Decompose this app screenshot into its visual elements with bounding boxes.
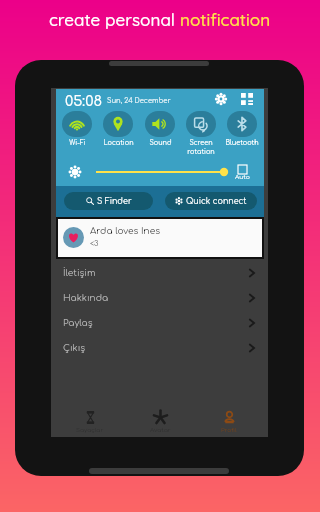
button[interactable]: Location — [96, 111, 140, 146]
staticText: Quick connect — [186, 197, 247, 206]
staticText: İletişim — [63, 268, 96, 278]
staticText: Paylaş — [63, 318, 93, 328]
button[interactable]: Edit quick settings — [241, 93, 253, 105]
button[interactable]: Avatar — [130, 406, 190, 437]
staticText: Sound — [149, 139, 172, 146]
button[interactable]: İletişim — [51, 260, 268, 285]
button[interactable]: Wi-Fi — [55, 111, 99, 146]
staticText: Location — [103, 139, 134, 146]
staticText: Wi-Fi — [69, 139, 86, 146]
staticText: Hakkında — [63, 293, 109, 303]
button[interactable]: Hakkında — [51, 285, 268, 310]
staticText: 05:08 — [65, 93, 103, 109]
staticText: Çıkış — [63, 343, 86, 353]
staticText: Auto — [235, 174, 250, 181]
button[interactable]: Arda loves Ines — [58, 219, 262, 257]
staticText: Screen rotation — [187, 139, 215, 155]
staticText: create personal — [49, 9, 180, 30]
staticText: Bluetooth — [225, 139, 259, 146]
staticText: notification — [180, 9, 271, 30]
button[interactable]: Screen rotation — [179, 111, 223, 155]
staticText: <3 — [90, 239, 99, 247]
button[interactable]: Sayaçlar — [60, 406, 120, 437]
staticText: Sun, 24 December — [107, 97, 171, 105]
button[interactable]: Auto brightness — [235, 163, 253, 183]
button[interactable]: Paylaş — [51, 310, 268, 335]
staticText: Arda loves Ines — [90, 226, 161, 236]
button[interactable]: Quick connect — [165, 192, 257, 210]
button[interactable]: Settings — [215, 93, 227, 105]
button[interactable]: Sound — [138, 111, 182, 146]
staticText: Profil — [221, 427, 237, 434]
button[interactable]: Profil — [199, 406, 259, 437]
button[interactable]: Bluetooth — [220, 111, 264, 146]
button[interactable]: S Finder — [64, 192, 153, 210]
button[interactable]: Çıkış — [51, 335, 268, 360]
staticText: S Finder — [97, 197, 132, 206]
